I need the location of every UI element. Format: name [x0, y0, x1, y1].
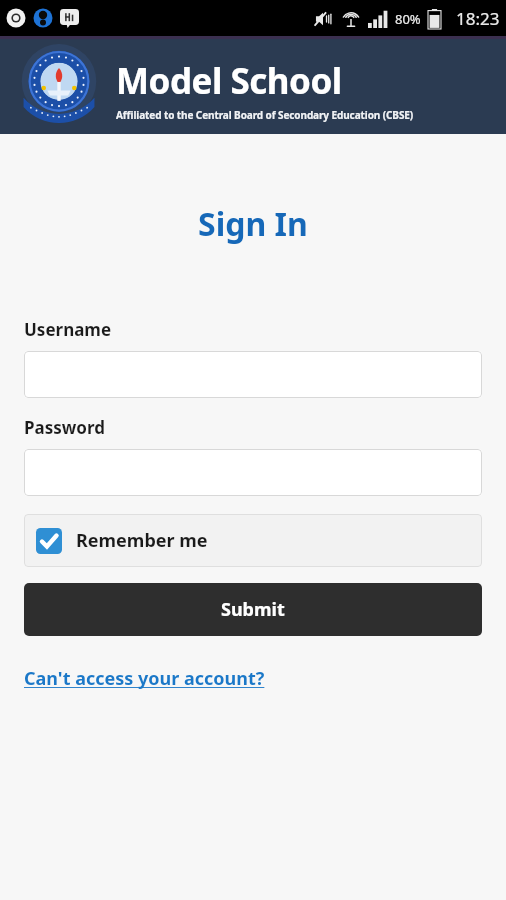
staticText: Username: [24, 318, 112, 341]
staticText: Sign In: [198, 202, 308, 246]
button[interactable]: Text input field: [24, 449, 482, 496]
button[interactable]: Remember me: [24, 514, 482, 567]
staticText: Submit: [221, 597, 285, 622]
button[interactable]: Can't access your account?: [24, 664, 265, 693]
staticText: 80%: [395, 10, 421, 28]
staticText: 18:23: [456, 7, 500, 30]
button[interactable]: Text input field: [24, 351, 482, 398]
staticText: Password: [24, 416, 105, 439]
staticText: Remember me: [76, 528, 208, 553]
staticText: Model School: [116, 57, 342, 105]
staticText: Affiliated to the Central Board of Secon…: [116, 108, 414, 122]
button[interactable]: Submit: [24, 583, 482, 636]
staticText: Can't access your account?: [24, 666, 265, 691]
